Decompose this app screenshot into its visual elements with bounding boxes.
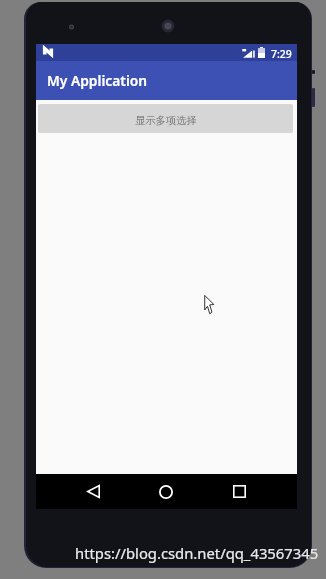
button[interactable]: 显示多项选择 <box>38 104 293 133</box>
button[interactable]: Back <box>71 474 115 509</box>
button[interactable]: Recents <box>217 474 261 509</box>
staticText: 显示多项选择 <box>135 114 197 127</box>
staticText: 7:29 <box>271 47 292 61</box>
button[interactable]: Home <box>144 474 188 509</box>
staticText: https://blog.csdn.net/qq_43567345 <box>75 543 319 563</box>
staticText: My Application <box>47 71 148 90</box>
